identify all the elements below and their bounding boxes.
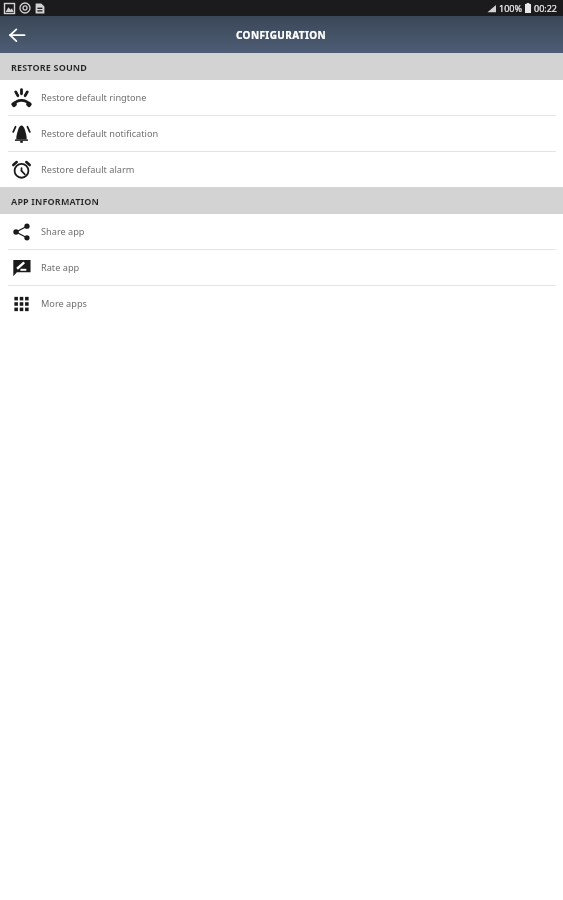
button[interactable]: Back <box>2 20 32 50</box>
staticText: Restore default ringtone <box>41 91 147 104</box>
staticText: 100% <box>499 2 522 14</box>
button[interactable]: Share app <box>0 214 563 249</box>
button[interactable]: Rate app <box>0 250 563 285</box>
staticText: RESTORE SOUND <box>11 61 88 73</box>
staticText: Restore default notification <box>41 127 159 140</box>
staticText: Rate app <box>41 261 80 274</box>
staticText: CONFIGURATION <box>236 28 327 42</box>
button[interactable]: Restore default ringtone <box>0 80 563 115</box>
button[interactable]: Restore default alarm <box>0 152 563 187</box>
staticText: APP INFORMATION <box>11 195 99 207</box>
button[interactable]: Restore default notification <box>0 116 563 151</box>
staticText: 00:22 <box>534 2 558 14</box>
staticText: Restore default alarm <box>41 163 135 176</box>
staticText: Share app <box>41 225 85 238</box>
staticText: More apps <box>41 297 87 310</box>
button[interactable]: More apps <box>0 286 563 321</box>
